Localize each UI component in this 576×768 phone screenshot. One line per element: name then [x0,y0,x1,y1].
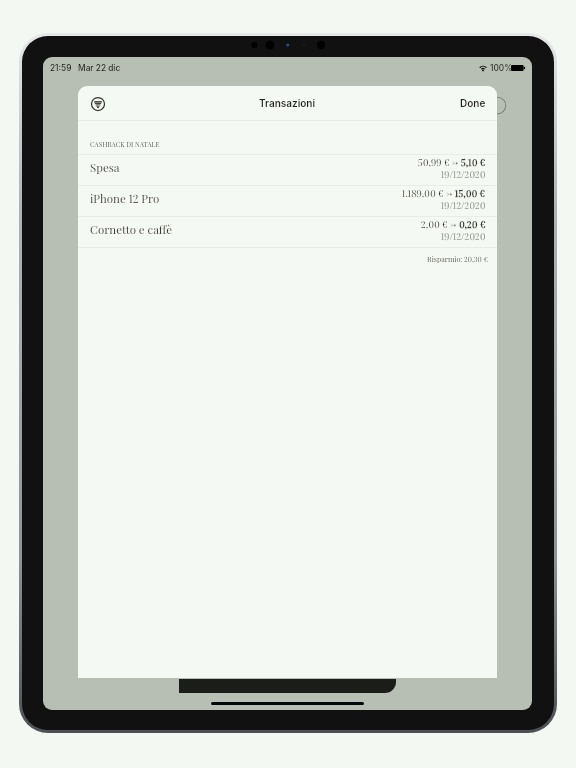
staticText: 2,00 € → [421,218,459,231]
staticText: 0,20 € [459,218,486,231]
button[interactable]: Done [460,97,486,109]
staticText: 21:59 Mar 22 dic [50,63,121,73]
staticText: iPhone 12 Pro [90,191,160,206]
staticText: Risparmio: 20,30 € [427,254,488,264]
staticText: Spesa [90,160,120,175]
staticText: 50,99 € → [418,156,461,169]
staticText: 15,00 € [455,187,486,200]
staticText: CASHBACK DI NATALE [90,140,160,149]
button[interactable]: Spesa [78,154,497,185]
button[interactable]: iPhone 12 Pro [78,185,497,216]
staticText: Cornetto e caffè [90,222,172,237]
button[interactable]: Cornetto e caffè [78,216,497,247]
staticText: Done [460,97,486,109]
staticText: Transazioni [259,97,316,109]
button[interactable]: Filter [88,94,108,114]
staticText: 19/12/2020 [441,230,486,243]
staticText: 1.189,00 € → [402,187,455,200]
staticText: 19/12/2020 [441,199,486,212]
staticText: 5,10 € [461,156,486,169]
staticText: 100% [490,63,513,73]
staticText: 19/12/2020 [441,168,486,181]
